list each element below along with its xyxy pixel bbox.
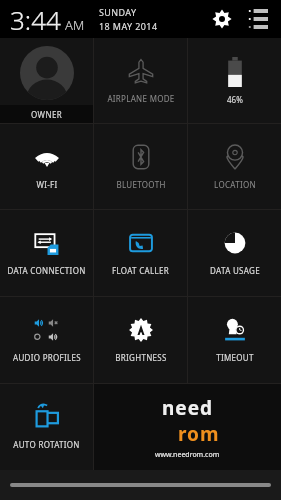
staticText: TIMEOUT: [216, 352, 254, 363]
button[interactable]: AUTO ROTATION: [0, 384, 93, 470]
button[interactable]: Drag handle: [10, 483, 271, 487]
button[interactable]: Notifications list: [243, 4, 273, 34]
staticText: BLUETOOTH: [116, 179, 166, 190]
button[interactable]: FLOAT CALLER: [94, 210, 187, 296]
staticText: www.needrom.com: [155, 450, 220, 460]
button[interactable]: BLUETOOTH: [94, 124, 187, 209]
staticText: SUNDAY: [99, 6, 137, 18]
button[interactable]: OWNER: [0, 38, 93, 123]
staticText: 3:44: [10, 2, 61, 37]
staticText: LOCATION: [214, 179, 256, 190]
staticText: FLOAT CALLER: [112, 265, 169, 276]
button[interactable]: DATA CONNECTION: [0, 210, 93, 296]
staticText: 18 MAY 2014: [99, 20, 158, 32]
button[interactable]: AIRPLANE MODE: [94, 38, 187, 123]
staticText: rom: [178, 421, 220, 447]
staticText: OWNER: [31, 109, 63, 120]
button[interactable]: WI-FI: [0, 124, 93, 209]
button[interactable]: LOCATION: [188, 124, 281, 209]
staticText: WI-FI: [36, 179, 58, 190]
staticText: BRIGHTNESS: [115, 352, 167, 363]
staticText: need: [162, 395, 214, 421]
button[interactable]: 46%: [188, 38, 281, 123]
button[interactable]: TIMEOUT: [188, 297, 281, 383]
staticText: DATA CONNECTION: [7, 265, 86, 276]
button[interactable]: DATA USAGE: [188, 210, 281, 296]
staticText: AUTO ROTATION: [13, 439, 80, 450]
staticText: AUDIO PROFILES: [13, 352, 81, 363]
button[interactable]: BRIGHTNESS: [94, 297, 187, 383]
staticText: 46%: [227, 94, 243, 105]
button[interactable]: Settings: [207, 4, 237, 34]
staticText: AIRPLANE MODE: [107, 93, 175, 104]
staticText: DATA USAGE: [210, 265, 260, 276]
staticText: AM: [65, 16, 85, 34]
button[interactable]: AUDIO PROFILES: [0, 297, 93, 383]
